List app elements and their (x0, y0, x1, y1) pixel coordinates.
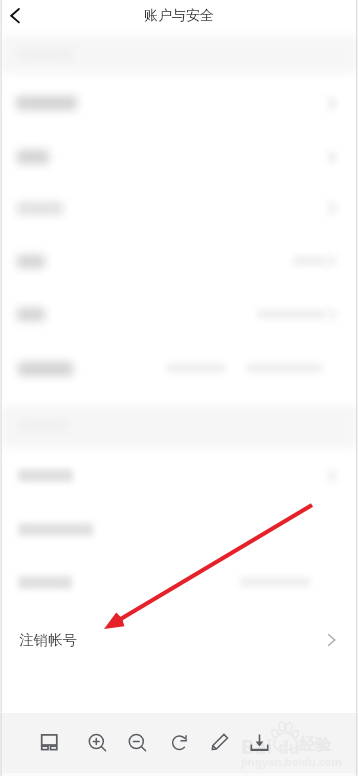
staticText: jingyan.baidu.com (241, 754, 343, 769)
button[interactable]: List item (0, 235, 358, 288)
button[interactable]: Fit to screen (33, 724, 65, 762)
staticText: du (278, 736, 300, 759)
button[interactable]: List item (0, 288, 358, 341)
button[interactable]: List item (0, 341, 358, 402)
button[interactable]: List item (0, 505, 358, 558)
staticText: 注销帐号 (19, 631, 77, 649)
button[interactable]: Zoom in (81, 724, 113, 762)
button[interactable]: Zoom out (121, 724, 153, 762)
button[interactable]: Rotate (163, 724, 195, 762)
button[interactable]: Edit (203, 724, 235, 762)
staticText: 经验 (299, 735, 331, 755)
button[interactable]: Back (2, 0, 32, 33)
button[interactable]: List item (0, 452, 358, 505)
button[interactable]: 注销帐号 (0, 613, 358, 667)
button[interactable]: List item (0, 558, 358, 613)
button[interactable]: List item (0, 75, 358, 129)
button[interactable]: List item (0, 182, 358, 235)
button[interactable]: List item (0, 129, 358, 182)
button[interactable]: Download (243, 724, 275, 762)
staticText: 账户与安全 (144, 7, 214, 25)
staticText: Bai (241, 733, 273, 760)
